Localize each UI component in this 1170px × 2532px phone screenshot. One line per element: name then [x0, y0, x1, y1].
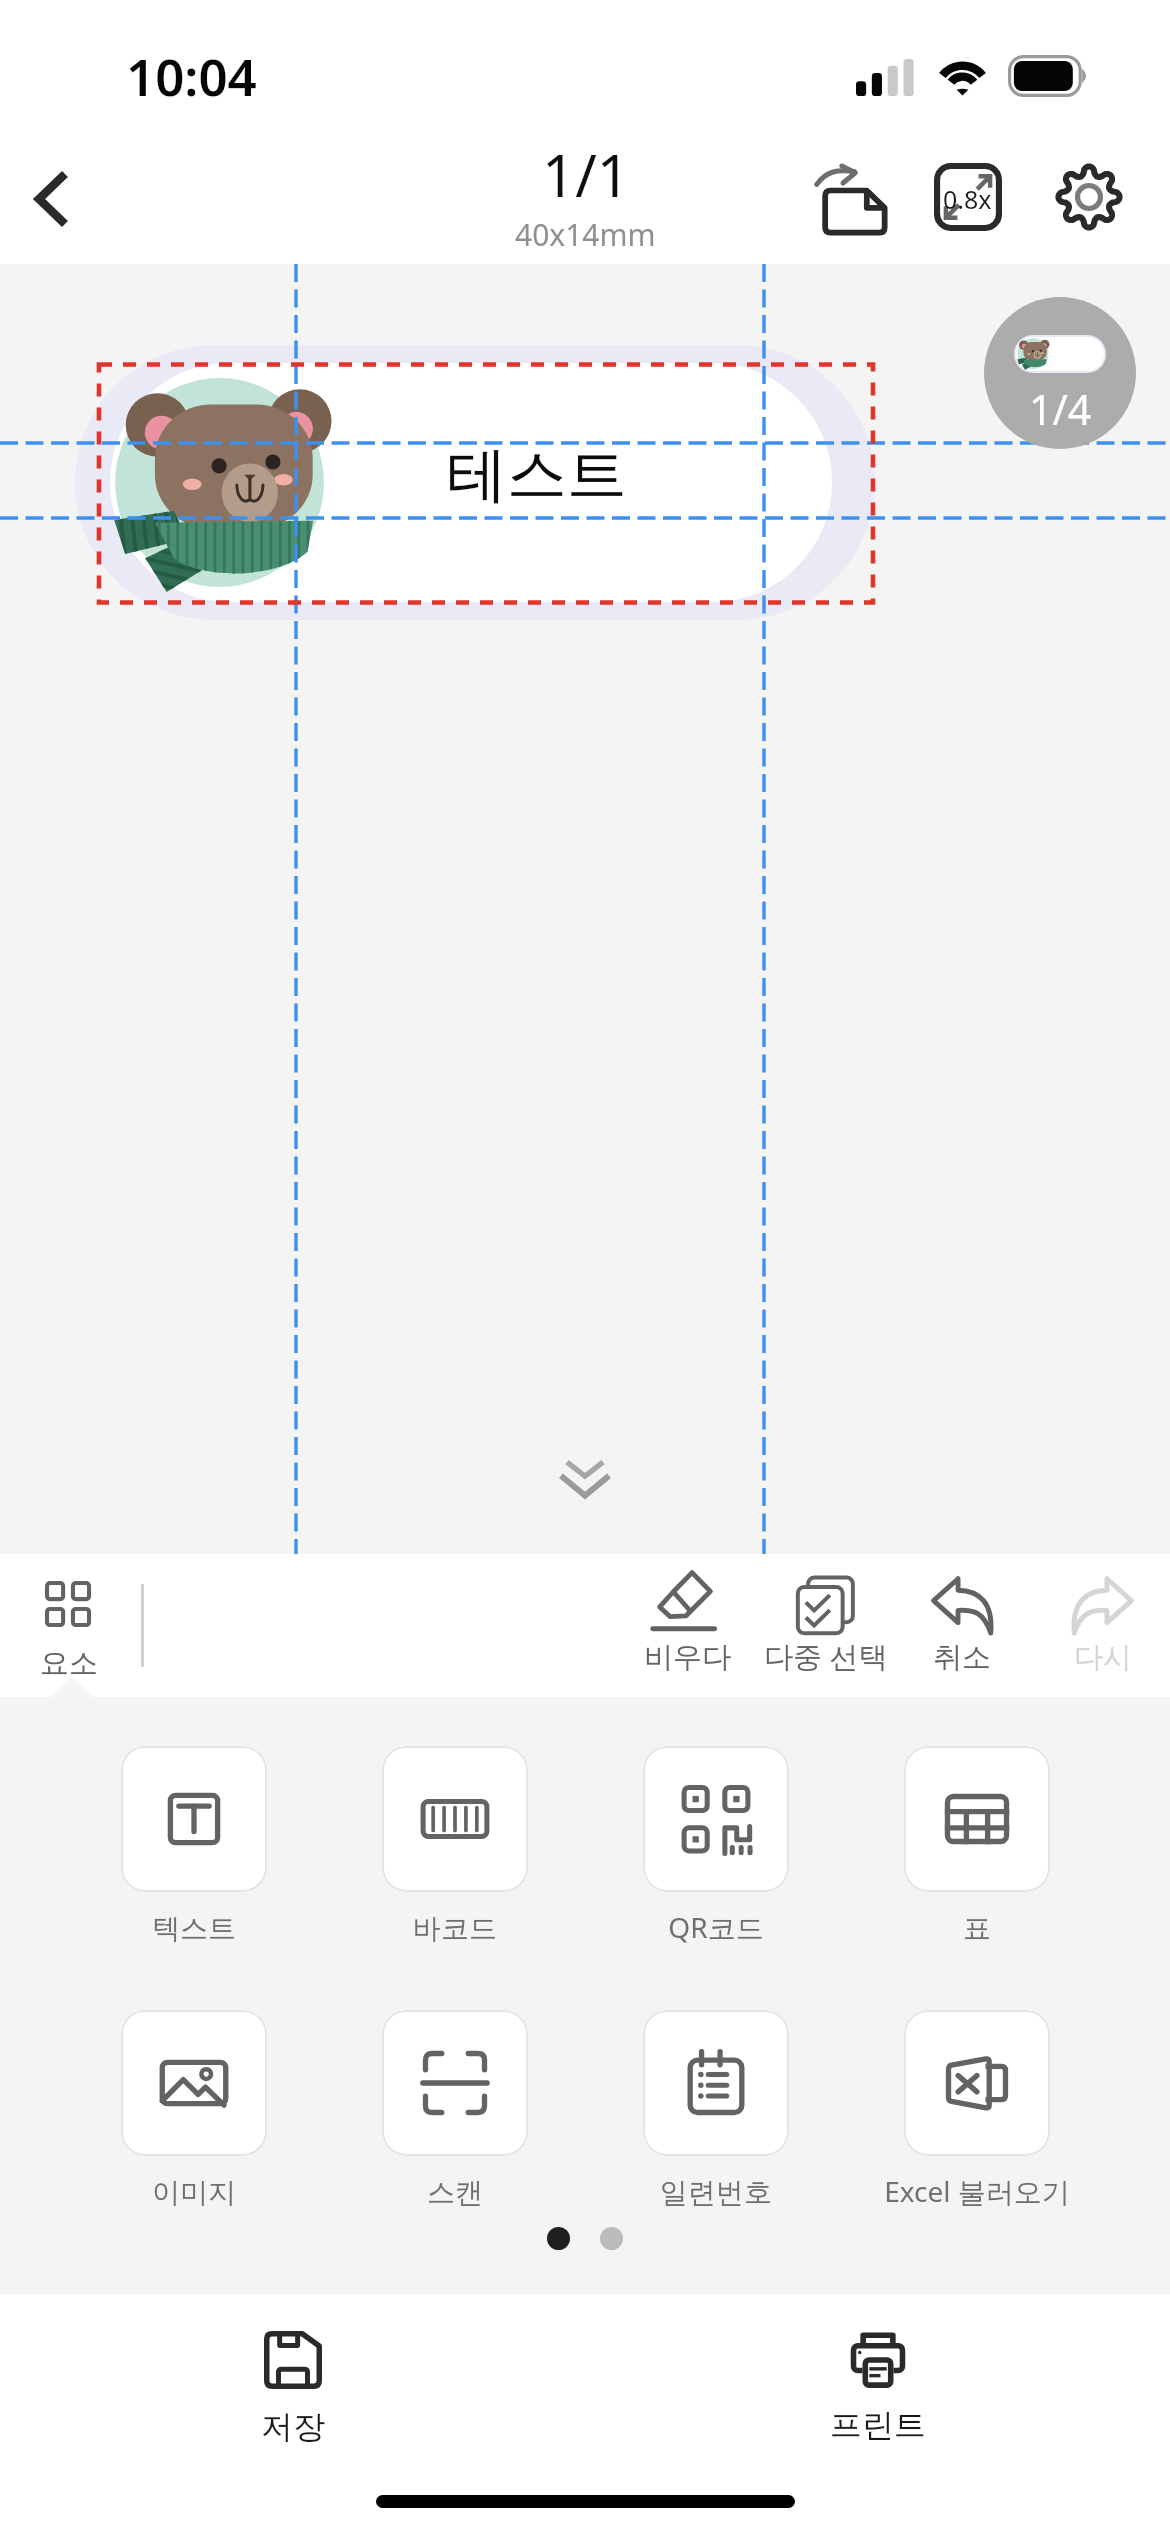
button[interactable]: Excel 불러오기	[846, 2010, 1107, 2210]
button[interactable]: 요소	[22, 1581, 116, 1682]
staticText: 바코드	[413, 1911, 497, 1946]
staticText: 1/1	[542, 135, 630, 214]
button[interactable]: 1/4	[984, 297, 1136, 449]
button[interactable]: QR코드	[585, 1746, 846, 1946]
staticText: 다중 선택	[764, 1636, 888, 1676]
button[interactable]: Back	[2, 149, 102, 249]
button[interactable]: 일련번호	[585, 2010, 846, 2210]
staticText: 표	[963, 1911, 991, 1946]
staticText: QR코드	[668, 1908, 764, 1946]
staticText: 일련번호	[660, 2175, 772, 2210]
staticText: 비우다	[644, 1639, 731, 1676]
staticText: 40x14mm	[515, 214, 656, 255]
staticText: 이미지	[152, 2175, 236, 2210]
button[interactable]: 스캔	[324, 2010, 585, 2210]
button[interactable]: 이미지	[63, 2010, 324, 2210]
staticText: 프린트	[830, 2405, 926, 2445]
button[interactable]: Settings	[1039, 147, 1139, 247]
staticText: 10:04	[126, 41, 257, 110]
staticText: Excel 불러오기	[884, 2172, 1070, 2210]
staticText: 스캔	[427, 2175, 483, 2210]
staticText: 1/4	[1029, 381, 1092, 437]
staticText: 다시	[1074, 1639, 1132, 1676]
button[interactable]: 다시	[993, 1572, 1170, 1676]
button[interactable]: Rotate	[800, 149, 900, 249]
button[interactable]: 표	[846, 1746, 1107, 1946]
button[interactable]: 다중 선택	[716, 1572, 936, 1676]
button[interactable]: 텍스트	[63, 1746, 324, 1946]
button[interactable]: 저장	[163, 2331, 423, 2447]
staticText: 0.8x	[943, 182, 992, 216]
staticText: 테스트	[447, 437, 627, 513]
button[interactable]: 프린트	[748, 2329, 1008, 2445]
button[interactable]: 취소	[852, 1572, 1072, 1676]
staticText: 저장	[261, 2407, 325, 2447]
staticText: 요소	[40, 1645, 98, 1682]
button[interactable]: Expand panel	[520, 1422, 650, 1536]
button[interactable]: Zoom level 0.8x	[918, 147, 1018, 247]
button[interactable]: 비우다	[577, 1572, 797, 1676]
button[interactable]: 바코드	[324, 1746, 585, 1946]
staticText: 텍스트	[152, 1911, 236, 1946]
staticText: 취소	[933, 1639, 991, 1676]
